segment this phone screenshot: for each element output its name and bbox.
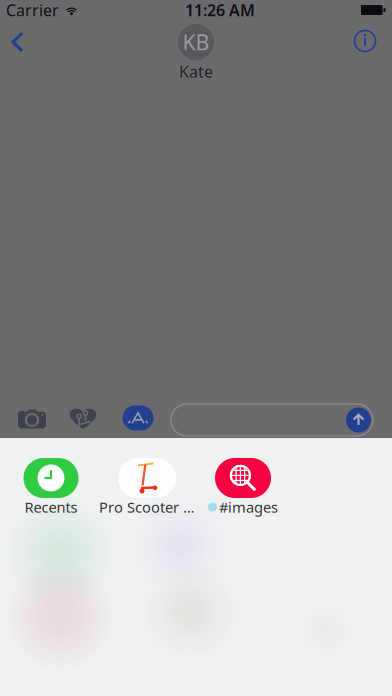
staticText: KB (182, 28, 209, 56)
button[interactable]: Details (348, 24, 382, 58)
button[interactable]: Digital Touch (58, 398, 108, 438)
staticText: Carrier (6, 0, 59, 21)
staticText: Kate (179, 61, 213, 82)
button[interactable]: App Store (113, 398, 163, 438)
staticText: Recents (24, 497, 77, 517)
staticText: Pro Scooter Em... (99, 497, 195, 517)
button[interactable]: Recents (3, 457, 99, 519)
button[interactable]: Pro Scooter Em... (99, 457, 195, 519)
button[interactable]: KB (146, 24, 246, 82)
button[interactable]: #images (195, 457, 291, 519)
button[interactable]: Camera (7, 398, 57, 438)
staticText: 11:26 AM (185, 0, 255, 21)
button[interactable]: Back (0, 24, 34, 58)
staticText: #images (219, 497, 278, 517)
button[interactable]: Send (344, 404, 373, 436)
